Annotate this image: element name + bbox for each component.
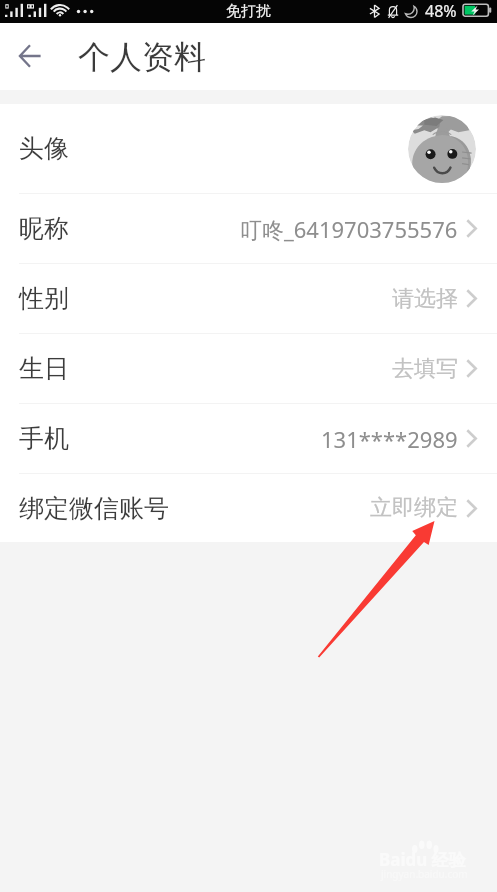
button[interactable]: 性别 — [0, 264, 497, 333]
staticText: 头像 — [19, 133, 69, 164]
button[interactable]: 生日 — [0, 334, 497, 403]
button[interactable]: 绑定微信账号 — [0, 474, 497, 542]
staticText: 免打扰 — [226, 2, 271, 21]
staticText: 立即绑定 — [370, 494, 458, 522]
staticText: 请选择 — [392, 285, 458, 313]
staticText: 绑定微信账号 — [19, 493, 169, 524]
staticText: 个人资料 — [78, 37, 206, 77]
staticText: 手机 — [19, 423, 69, 454]
staticText: 叮咚_6419703755576 — [240, 214, 458, 244]
staticText: 昵称 — [19, 213, 69, 244]
staticText: 生日 — [19, 353, 69, 384]
staticText: 性别 — [19, 283, 69, 314]
button[interactable]: 昵称 — [0, 194, 497, 263]
staticText: 48% — [425, 0, 457, 22]
button[interactable]: 手机 — [0, 404, 497, 473]
button[interactable]: Back — [8, 35, 52, 79]
staticText: 131****2989 — [321, 424, 458, 454]
button[interactable]: 头像 — [0, 104, 497, 193]
staticText: 去填写 — [392, 355, 458, 383]
